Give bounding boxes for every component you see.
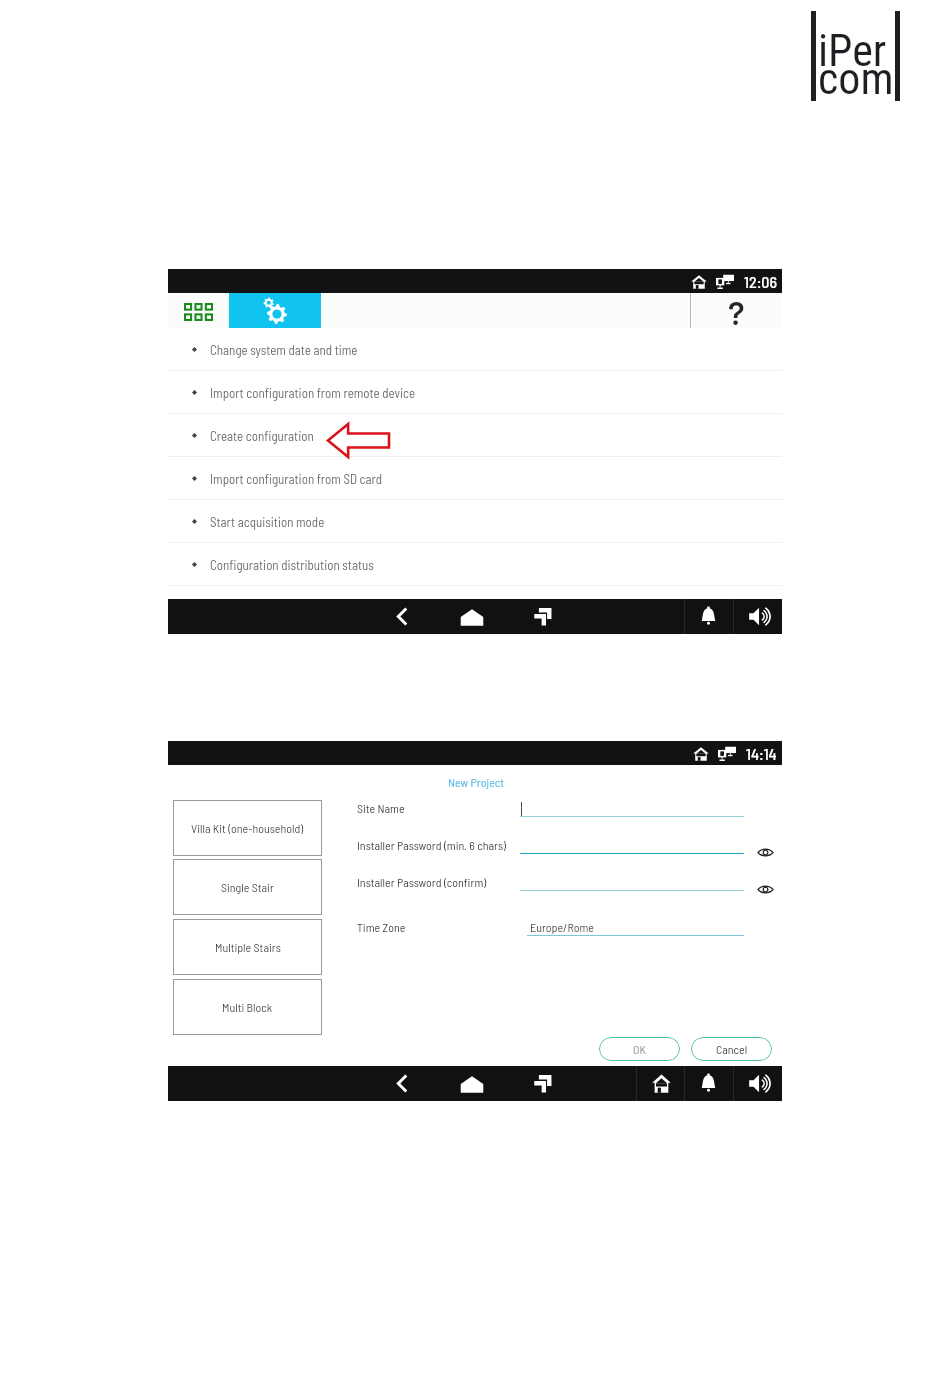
button[interactable]: Create configuration: [168, 414, 782, 457]
button[interactable]: House: [644, 1066, 678, 1101]
button[interactable]: OK: [599, 1037, 680, 1061]
staticText: 14:14: [746, 744, 777, 763]
button[interactable]: Change system date and time: [168, 328, 782, 371]
button[interactable]: Multi Block: [173, 979, 322, 1035]
button[interactable]: Multiple Stairs: [173, 919, 322, 975]
staticText: Site Name: [357, 801, 405, 815]
staticText: Installer Password (confirm): [357, 875, 487, 889]
staticText: Change system date and time: [210, 342, 358, 358]
other: Apps: [184, 303, 213, 321]
button[interactable]: Back: [385, 599, 419, 634]
button[interactable]: Home: [455, 1066, 489, 1101]
staticText: ?: [728, 292, 745, 327]
staticText: Multi Block: [222, 1000, 273, 1014]
button[interactable]: Recents: [526, 599, 560, 634]
button[interactable]: Single Stair: [173, 859, 322, 915]
button[interactable]: Back: [385, 1066, 419, 1101]
staticText: com: [818, 53, 894, 105]
button[interactable]: Show password: [754, 842, 776, 862]
button[interactable]: Start acquisition mode: [168, 500, 782, 543]
staticText: Villa Kit (one-household): [191, 821, 304, 835]
other: Settings: [262, 297, 288, 323]
button[interactable]: Recents: [526, 1066, 560, 1101]
button[interactable]: Home: [455, 599, 489, 634]
button[interactable]: Apps: [168, 293, 229, 328]
button[interactable]: Configuration distribution status: [168, 543, 782, 586]
staticText: Configuration distribution status: [210, 557, 374, 573]
staticText: Import configuration from remote device: [210, 385, 416, 401]
button[interactable]: Settings: [229, 293, 321, 328]
button[interactable]: Show password: [754, 879, 776, 899]
button[interactable]: Villa Kit (one-household): [173, 800, 322, 856]
staticText: Multiple Stairs: [215, 940, 281, 954]
staticText: Installer Password (min. 6 chars): [357, 838, 506, 852]
button[interactable]: ?: [691, 293, 782, 328]
button[interactable]: Volume: [742, 1066, 776, 1101]
button[interactable]: Import configuration from SD card: [168, 457, 782, 500]
staticText: New Project: [448, 775, 505, 789]
staticText: OK: [633, 1042, 646, 1056]
button[interactable]: Cancel: [691, 1037, 772, 1061]
staticText: Start acquisition mode: [210, 514, 325, 530]
button[interactable]: Notifications: [691, 599, 725, 634]
staticText: 12:06: [744, 272, 777, 291]
staticText: Cancel: [716, 1042, 748, 1056]
button[interactable]: Volume: [742, 599, 776, 634]
button[interactable]: Notifications: [691, 1066, 725, 1101]
button[interactable]: Import configuration from remote device: [168, 371, 782, 414]
staticText: Time Zone: [357, 920, 406, 934]
staticText: iPer: [818, 25, 887, 77]
staticText: Import configuration from SD card: [210, 471, 383, 487]
staticText: Single Stair: [221, 880, 274, 894]
staticText: Create configuration: [210, 428, 314, 444]
staticText: Europe/Rome: [530, 920, 594, 934]
